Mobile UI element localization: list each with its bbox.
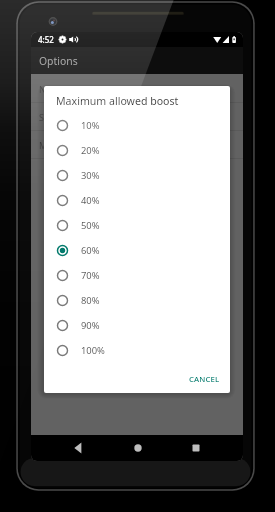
button[interactable]: 40%	[44, 188, 230, 213]
staticText: 70%	[81, 269, 100, 282]
staticText: 30%	[81, 169, 100, 182]
staticText: 20%	[81, 144, 100, 157]
staticText: Notifications	[39, 83, 93, 95]
staticText: More options	[39, 139, 96, 151]
button[interactable]: Recent apps	[185, 437, 207, 459]
staticText: 90%	[81, 319, 100, 332]
staticText: Maximum allowed boost	[56, 94, 179, 108]
staticText: Options	[39, 54, 78, 68]
staticText: 50%	[81, 219, 100, 232]
button[interactable]: Home	[127, 437, 149, 459]
button[interactable]: Back	[67, 437, 89, 459]
button[interactable]: More options	[31, 131, 243, 159]
button[interactable]: CANCEL	[187, 370, 221, 389]
button[interactable]: 50%	[44, 213, 230, 238]
staticText: Sounds	[39, 111, 71, 123]
button[interactable]: 70%	[44, 263, 230, 288]
staticText: 4:52	[38, 34, 54, 45]
staticText: 100%	[81, 344, 105, 357]
button[interactable]: 20%	[44, 138, 230, 163]
button[interactable]: 10%	[44, 113, 230, 138]
staticText: 80%	[81, 294, 100, 307]
button[interactable]: 30%	[44, 163, 230, 188]
staticText: CANCEL	[189, 374, 220, 385]
button[interactable]: Notifications	[31, 75, 243, 103]
staticText: 60%	[81, 244, 100, 257]
staticText: 10%	[81, 119, 100, 132]
button[interactable]: 60%	[44, 238, 230, 263]
button[interactable]: 80%	[44, 288, 230, 313]
staticText: 40%	[81, 194, 100, 207]
button[interactable]: 100%	[44, 338, 230, 363]
button[interactable]: 90%	[44, 313, 230, 338]
button[interactable]: Sounds	[31, 103, 243, 131]
